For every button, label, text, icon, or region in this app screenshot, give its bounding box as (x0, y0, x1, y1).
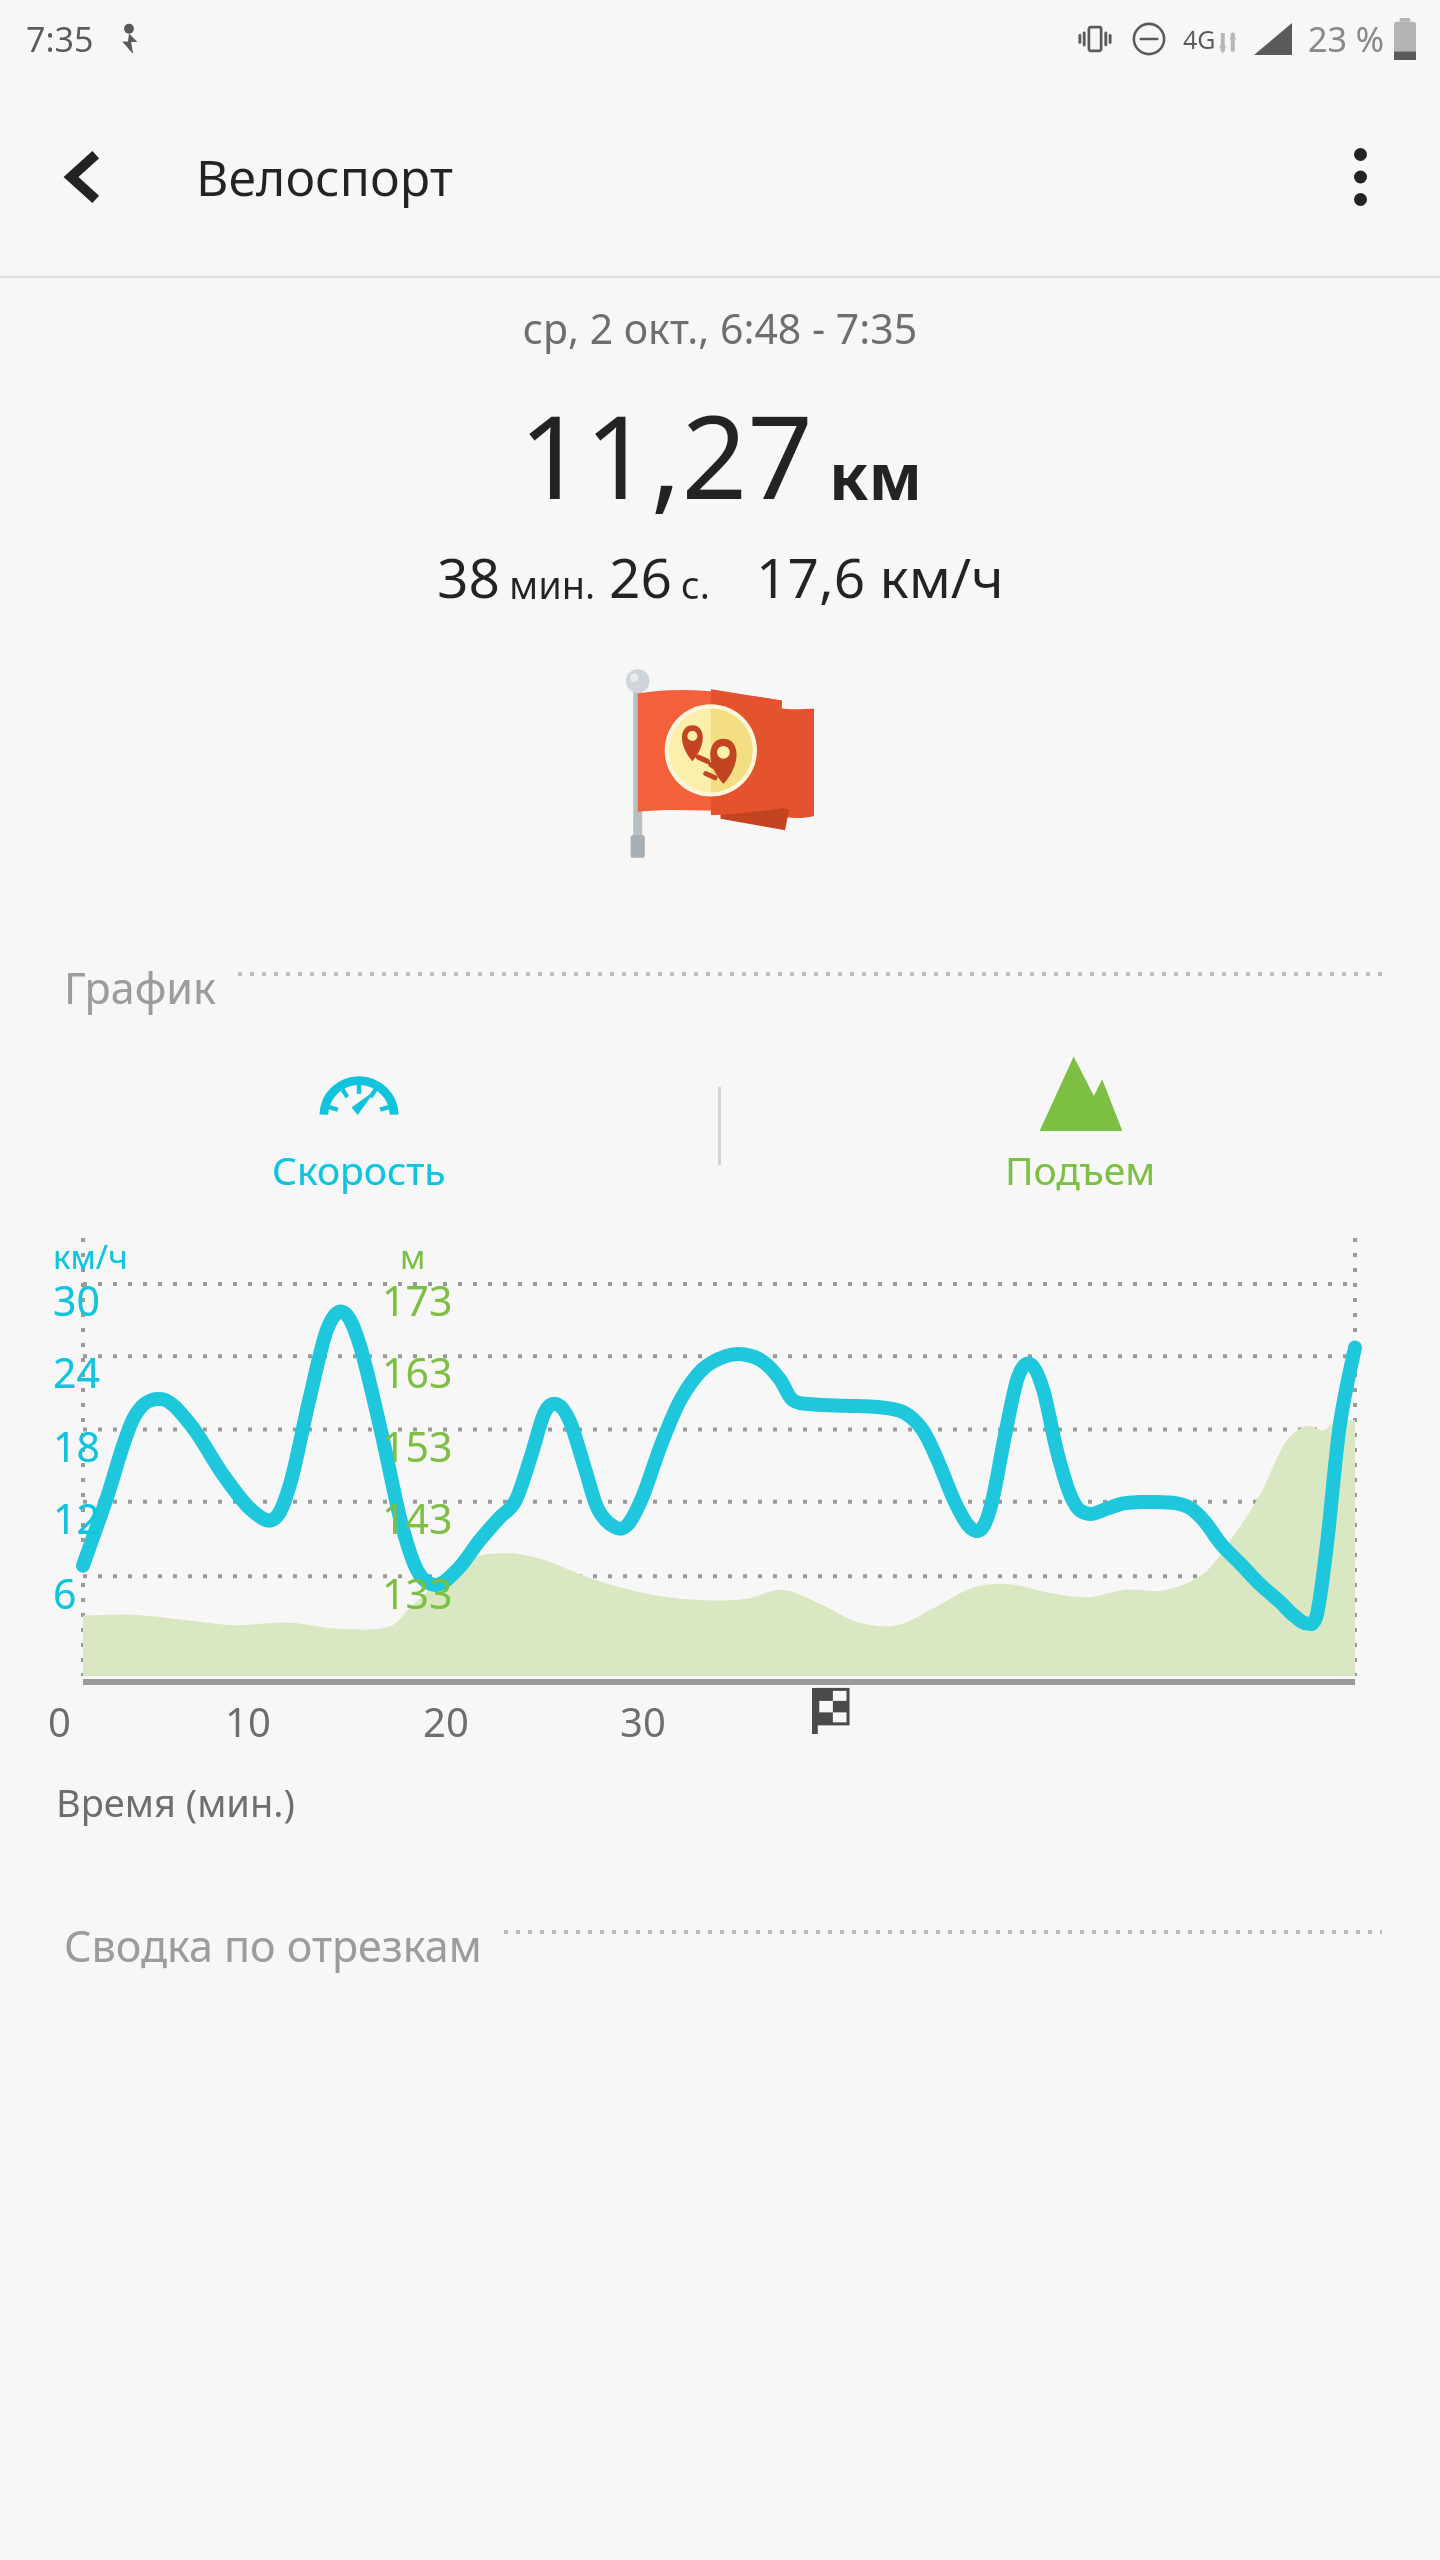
staticText: 30 (620, 1694, 666, 1748)
staticText: Подъем (1005, 1143, 1156, 1196)
staticText: 173 (382, 1272, 453, 1328)
staticText: 7:35 (26, 16, 94, 62)
staticText: 20 (423, 1694, 469, 1748)
staticText: 6 (53, 1565, 77, 1621)
button[interactable]: Сводка по отрезкам (64, 1916, 1382, 1975)
staticText: 18 (53, 1418, 100, 1474)
staticText: Время (мин.) (56, 1776, 295, 1828)
staticText: 163 (382, 1344, 453, 1400)
button[interactable]: График (64, 958, 1382, 1017)
staticText: 0 (48, 1694, 71, 1748)
button[interactable]: Back (26, 121, 138, 233)
staticText: 12 (53, 1490, 100, 1546)
staticText: 30 (53, 1272, 100, 1328)
staticText: 4G (1183, 22, 1216, 56)
button[interactable]: More options (1302, 119, 1418, 235)
staticText: Скорость (272, 1143, 446, 1196)
staticText: 38 (437, 539, 500, 614)
staticText: с. (681, 558, 710, 610)
staticText: м (400, 1234, 426, 1279)
staticText: 23 % (1308, 16, 1384, 62)
staticText: 11,27 (519, 376, 813, 533)
staticText: 26 (609, 539, 672, 614)
staticText: ср, 2 окт., 6:48 - 7:35 (0, 300, 1440, 356)
staticText: Сводка по отрезкам (64, 1916, 482, 1975)
staticText: 133 (382, 1565, 453, 1621)
staticText: 10 (225, 1694, 271, 1748)
staticText: км/ч (53, 1234, 128, 1279)
staticText: Велоспорт (196, 143, 453, 211)
staticText: 143 (382, 1490, 453, 1546)
staticText: мин. (509, 558, 596, 610)
staticText: График (64, 958, 216, 1017)
staticText: 17,6 км/ч (756, 539, 1004, 614)
staticText: 153 (382, 1418, 453, 1474)
button[interactable]: Подъем (721, 1055, 1440, 1196)
staticText: 24 (53, 1344, 100, 1400)
staticText: км (829, 432, 922, 519)
button[interactable]: Скорость (0, 1055, 718, 1196)
